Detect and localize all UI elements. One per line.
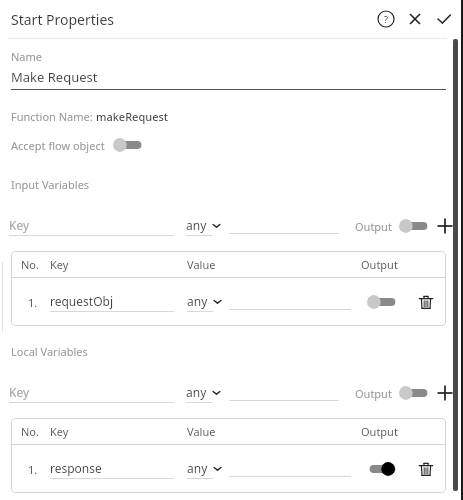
button[interactable]: Name <box>11 49 446 90</box>
staticText: Value <box>187 424 216 439</box>
staticText: 1. <box>28 462 38 477</box>
staticText: any <box>186 384 207 400</box>
button[interactable]: Close <box>405 9 425 29</box>
button[interactable]: any <box>186 384 230 403</box>
button[interactable]: Toggle off <box>112 137 142 153</box>
button[interactable]: Delete row <box>416 292 436 312</box>
button[interactable]: Scrollbar <box>453 39 458 491</box>
button[interactable]: Toggle off <box>398 385 428 401</box>
staticText: Output <box>355 219 392 234</box>
button[interactable]: response <box>50 460 174 479</box>
button[interactable]: any <box>186 217 230 236</box>
staticText: Make Request <box>11 68 98 86</box>
button[interactable]: Key <box>9 384 174 403</box>
staticText: any <box>186 217 207 233</box>
staticText: Value <box>187 257 216 272</box>
button[interactable]: any <box>187 293 231 312</box>
staticText: Output <box>355 386 392 401</box>
staticText: Name <box>11 49 43 64</box>
staticText: Key <box>9 384 30 400</box>
button[interactable]: Toggle off <box>366 294 396 310</box>
button[interactable]: Toggle on <box>366 461 396 477</box>
staticText: Local Variables <box>11 344 88 359</box>
staticText: Output <box>361 257 398 272</box>
button[interactable] <box>229 461 351 477</box>
staticText: Key <box>50 424 69 439</box>
staticText: Key <box>9 217 30 233</box>
button[interactable]: Add variable <box>434 215 456 237</box>
staticText: makeRequest <box>96 109 169 124</box>
staticText: Function Name: <box>11 109 96 124</box>
staticText: No. <box>21 257 39 272</box>
button[interactable]: any <box>187 460 231 479</box>
button[interactable]: requestObj <box>50 293 174 312</box>
button[interactable]: Help <box>376 9 396 29</box>
button[interactable]: Confirm <box>434 9 454 29</box>
button[interactable]: Toggle off <box>398 218 428 234</box>
button[interactable] <box>229 218 339 234</box>
staticText: Output <box>361 424 398 439</box>
staticText: Input Variables <box>11 177 90 192</box>
staticText: any <box>187 293 208 309</box>
staticText: Accept flow object <box>11 138 105 153</box>
staticText: 1. <box>28 295 38 310</box>
staticText: Start Properties <box>11 10 115 29</box>
staticText: response <box>50 460 102 476</box>
staticText: Key <box>50 257 69 272</box>
button[interactable]: Delete row <box>416 459 436 479</box>
staticText: No. <box>21 424 39 439</box>
staticText: any <box>187 460 208 476</box>
button[interactable] <box>229 385 339 401</box>
button[interactable] <box>229 294 351 310</box>
staticText: requestObj <box>50 293 113 309</box>
staticText: ? <box>384 13 388 25</box>
button[interactable]: Key <box>9 217 174 236</box>
button[interactable]: Add variable <box>434 382 456 404</box>
